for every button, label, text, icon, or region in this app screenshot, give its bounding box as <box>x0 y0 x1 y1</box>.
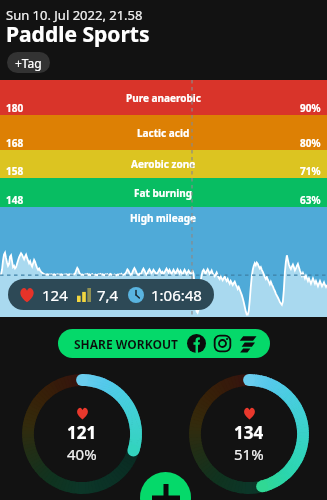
button[interactable]: SHARE WORKOUT <box>58 329 270 358</box>
button[interactable]: Share to Facebook <box>187 334 206 353</box>
staticText: 7,4 <box>97 285 119 305</box>
staticText: 1:06:48 <box>151 285 202 305</box>
staticText: Pure anaerobic <box>126 91 201 105</box>
staticText: Paddle Sports <box>6 20 150 49</box>
staticText: SHARE WORKOUT <box>74 336 178 352</box>
button[interactable]: 121 <box>22 374 142 494</box>
staticText: 158 <box>6 164 24 178</box>
button[interactable]: Pure anaerobic <box>0 80 327 115</box>
button[interactable]: Share to Instagram <box>213 334 232 353</box>
button[interactable]: +Tag <box>7 52 50 73</box>
staticText: 90% <box>300 101 321 115</box>
button[interactable]: Fat burning <box>0 178 327 207</box>
staticText: Sun 10. Jul 2022, 21.58 <box>6 6 143 24</box>
button[interactable]: Add workout <box>140 472 191 500</box>
button[interactable]: Share to Strava <box>239 334 258 353</box>
button[interactable]: Aerobic zone <box>0 150 327 178</box>
staticText: Lactic acid <box>137 126 190 140</box>
staticText: 63% <box>300 193 321 207</box>
staticText: 121 <box>67 421 97 444</box>
staticText: 124 <box>42 285 68 305</box>
staticText: 71% <box>300 164 321 178</box>
staticText: 40% <box>67 444 97 464</box>
staticText: +Tag <box>15 55 42 71</box>
staticText: 80% <box>300 136 321 150</box>
staticText: 180 <box>6 101 24 115</box>
staticText: 168 <box>6 136 24 150</box>
button[interactable]: Lactic acid <box>0 115 327 150</box>
staticText: High mileage <box>130 211 197 225</box>
button[interactable]: 134 <box>189 374 309 494</box>
staticText: Fat burning <box>134 186 193 200</box>
button[interactable]: 124 <box>8 279 214 310</box>
staticText: 51% <box>234 444 264 464</box>
staticText: 134 <box>234 421 264 444</box>
staticText: Aerobic zone <box>131 157 196 171</box>
staticText: 148 <box>6 193 24 207</box>
